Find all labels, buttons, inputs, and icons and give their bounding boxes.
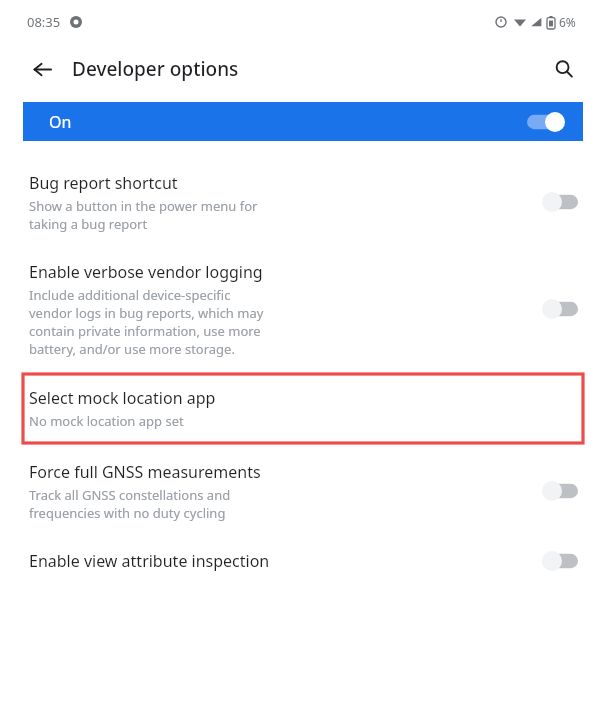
- staticText: No mock location app set: [29, 412, 184, 430]
- staticText: Force full GNSS measurements: [29, 461, 261, 483]
- staticText: vendor logs in bug reports, which may: [29, 304, 264, 322]
- staticText: Include additional device-specific: [29, 286, 231, 304]
- staticText: Enable view attribute inspection: [29, 550, 270, 572]
- staticText: On: [49, 111, 527, 133]
- staticText: Enable verbose vendor logging: [29, 261, 263, 283]
- button[interactable]: Select mock location app: [23, 374, 583, 443]
- staticText: taking a bug report: [29, 215, 148, 233]
- staticText: contain private information, use more: [29, 322, 261, 340]
- button[interactable]: Enable verbose vendor logging: [0, 253, 606, 365]
- staticText: 6%: [559, 14, 576, 30]
- staticText: Bug report shortcut: [29, 172, 178, 194]
- button[interactable]: On: [23, 102, 583, 141]
- button[interactable]: Enable view attribute inspection: [0, 539, 606, 583]
- button[interactable]: Back: [22, 49, 62, 89]
- staticText: Show a button in the power menu for: [29, 197, 258, 215]
- button[interactable]: Bug report shortcut: [0, 163, 606, 241]
- staticText: battery, and/or use more storage.: [29, 340, 235, 358]
- button[interactable]: Search: [544, 49, 584, 89]
- staticText: Select mock location app: [29, 387, 216, 409]
- staticText: Developer options: [72, 56, 239, 82]
- button[interactable]: Force full GNSS measurements: [0, 453, 606, 529]
- staticText: frequencies with no duty cycling: [29, 504, 226, 522]
- staticText: Track all GNSS constellations and: [29, 486, 231, 504]
- staticText: 08:35: [27, 13, 61, 31]
